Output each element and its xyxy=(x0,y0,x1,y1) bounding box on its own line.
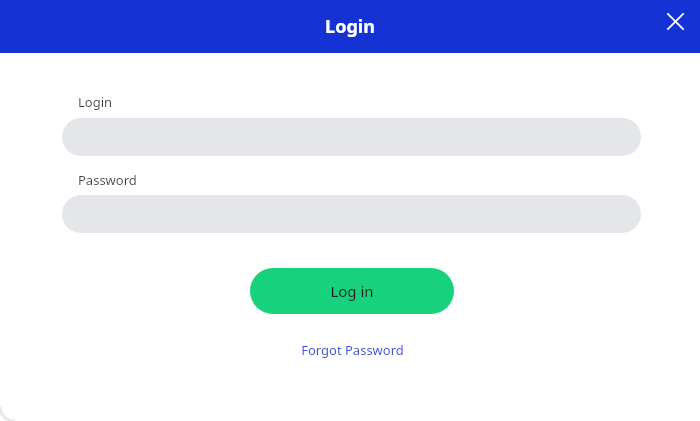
staticText: Log in xyxy=(330,281,374,301)
staticText: Password xyxy=(78,171,137,189)
button[interactable]: Log in xyxy=(250,268,454,314)
staticText: Login xyxy=(325,14,375,39)
button[interactable]: Login input field xyxy=(62,118,641,156)
button[interactable]: Forgot Password xyxy=(285,337,419,363)
staticText: Forgot Password xyxy=(301,341,404,359)
button[interactable]: Close xyxy=(655,1,695,41)
button[interactable]: Password input field xyxy=(62,195,641,233)
staticText: Login xyxy=(78,93,113,111)
